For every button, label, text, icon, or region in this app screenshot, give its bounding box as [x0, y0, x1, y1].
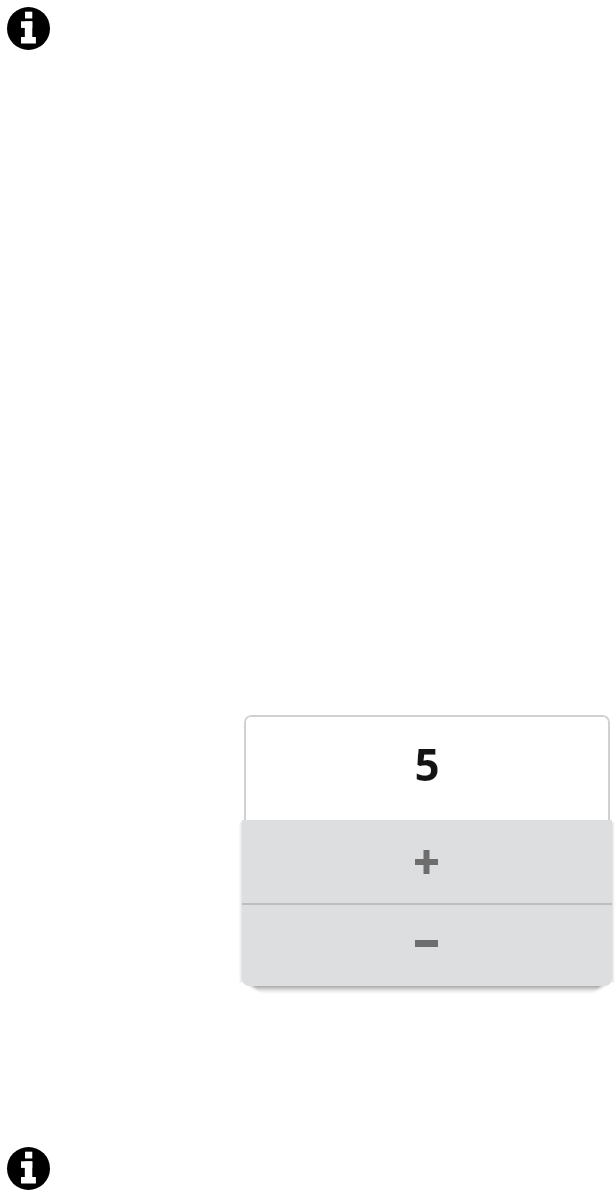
staticText: 5 [414, 734, 440, 794]
button[interactable]: Info [7, 1147, 50, 1190]
button[interactable]: Decrease value [242, 905, 612, 986]
button[interactable]: 5 [244, 715, 610, 827]
button[interactable]: Increase value [242, 820, 612, 903]
button[interactable]: Info [7, 7, 50, 50]
